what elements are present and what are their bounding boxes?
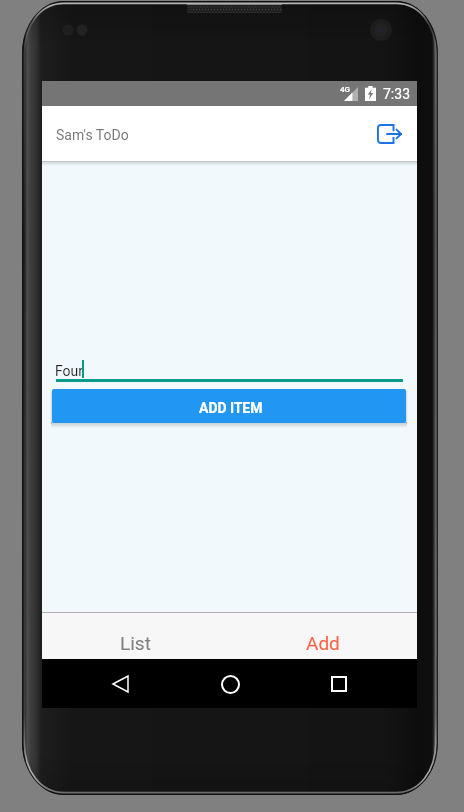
- staticText: 4G: [340, 85, 350, 94]
- staticText: Sam's ToDo: [56, 127, 129, 143]
- button[interactable]: Add: [229, 612, 417, 659]
- staticText: 7:33: [383, 86, 410, 102]
- staticText: Add: [306, 632, 340, 654]
- staticText: Four: [55, 363, 84, 379]
- button[interactable]: Home: [210, 664, 250, 704]
- button[interactable]: Log out: [373, 118, 405, 150]
- staticText: List: [120, 632, 151, 654]
- button[interactable]: ADD ITEM: [52, 389, 406, 423]
- button[interactable]: Back: [100, 664, 140, 704]
- button[interactable]: Recent apps: [319, 664, 359, 704]
- button[interactable]: List: [42, 612, 229, 659]
- staticText: ADD ITEM: [199, 400, 263, 416]
